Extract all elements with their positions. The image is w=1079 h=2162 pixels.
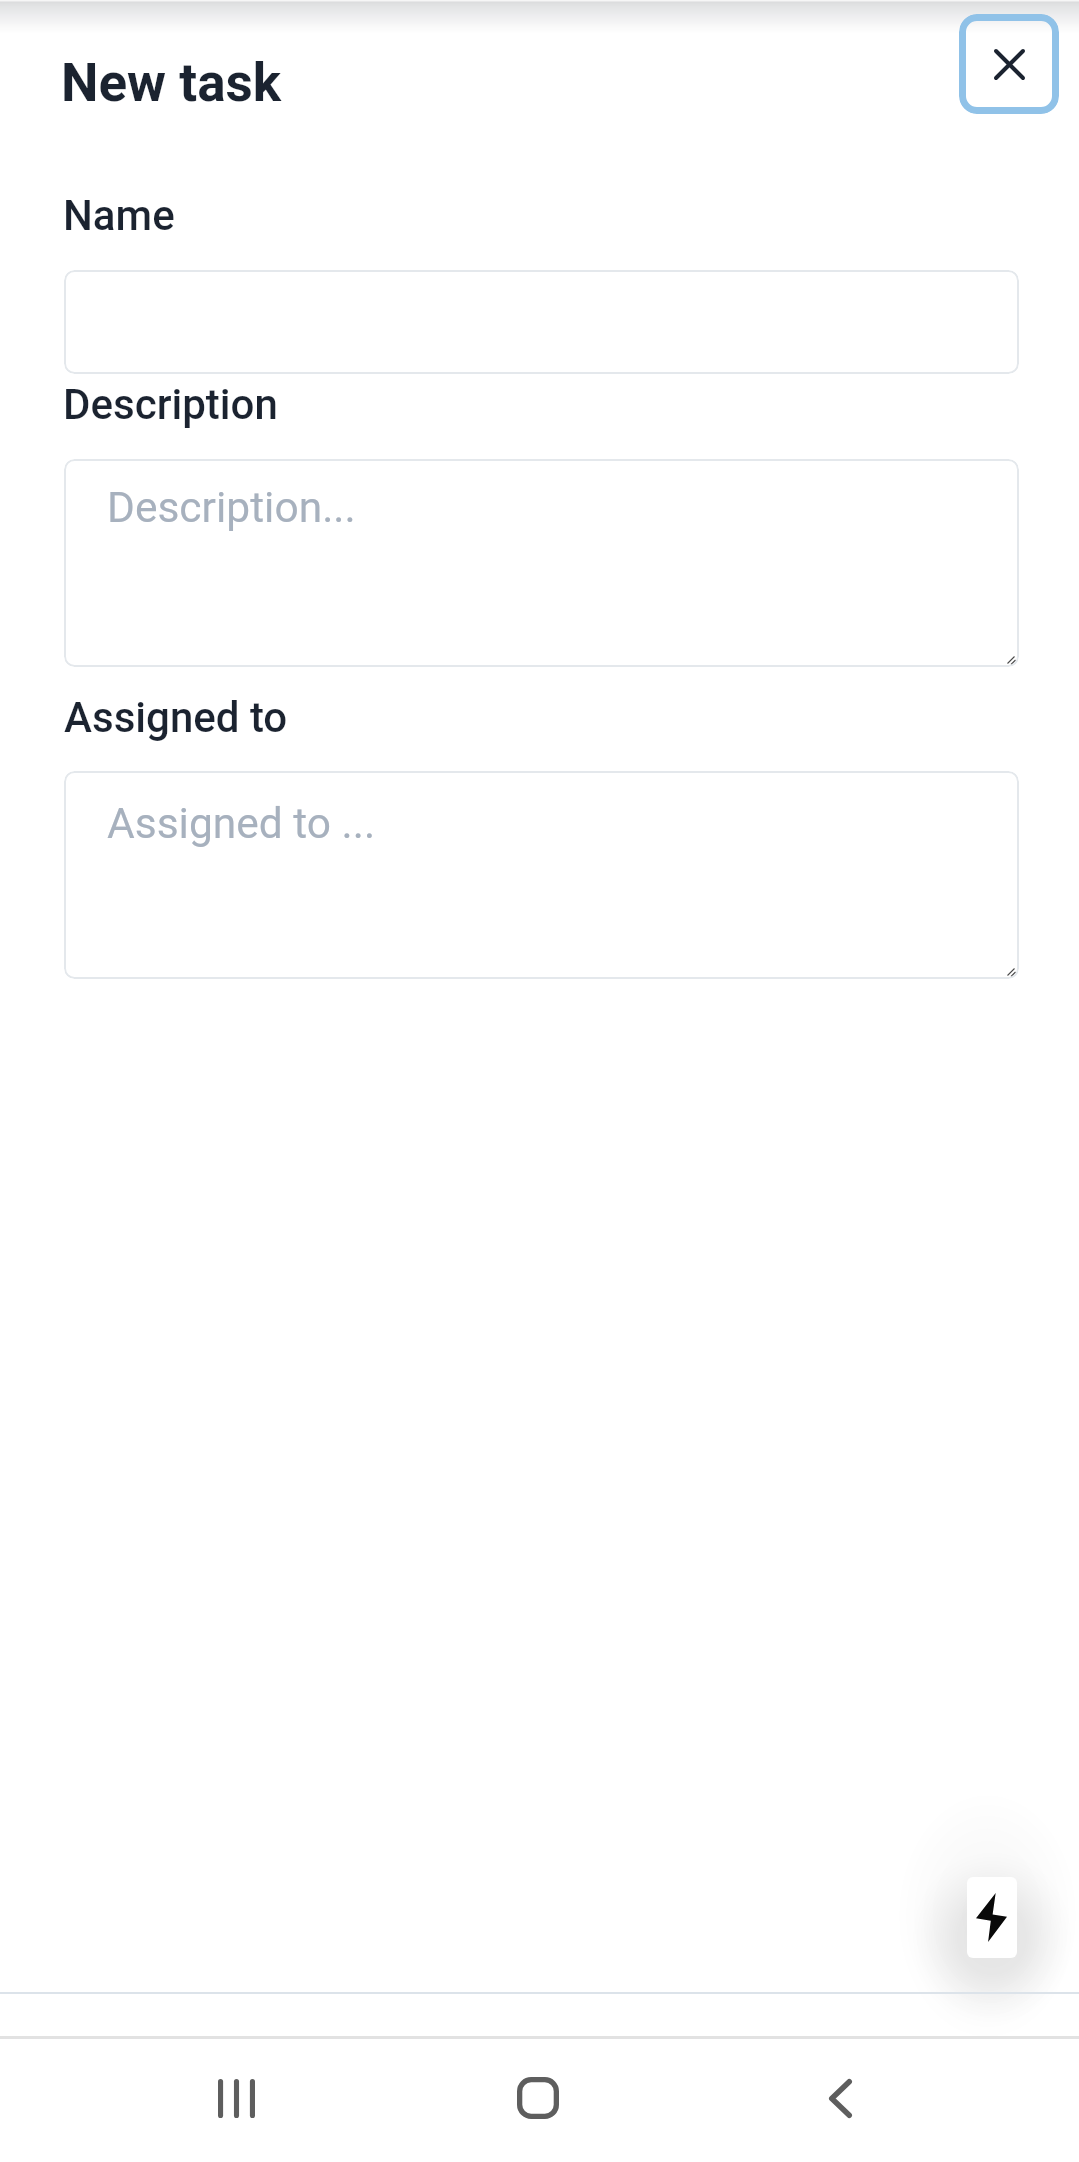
staticText: Description... [107, 483, 356, 533]
staticText: Assigned to ... [107, 799, 376, 849]
button[interactable]: Recent apps [190, 2050, 282, 2146]
button[interactable] [64, 270, 1019, 374]
button[interactable]: Back [794, 2050, 886, 2146]
staticText: Name [63, 191, 175, 240]
button[interactable] [64, 771, 1019, 979]
button[interactable] [64, 459, 1019, 667]
button[interactable]: Home [492, 2050, 584, 2146]
staticText: New task [61, 52, 282, 114]
button[interactable]: Close [959, 14, 1059, 114]
button[interactable]: Quick action [967, 1877, 1017, 1958]
staticText: Assigned to [64, 693, 288, 742]
staticText: Description [63, 380, 278, 429]
